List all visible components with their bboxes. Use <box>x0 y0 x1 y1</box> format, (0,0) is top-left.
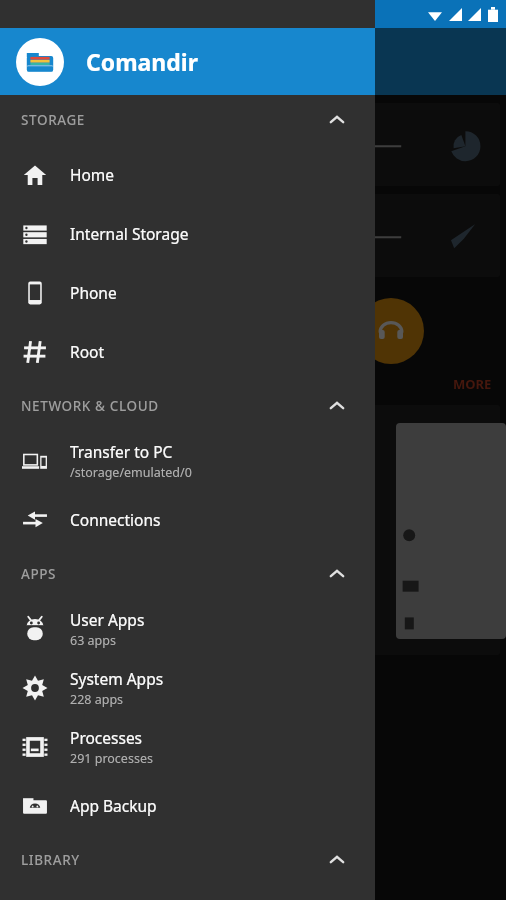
button[interactable]: STORAGE <box>0 95 375 145</box>
staticText: Home <box>70 164 115 185</box>
staticText: Phone <box>70 282 117 303</box>
button[interactable]: Transfer to PC <box>0 431 375 490</box>
button[interactable]: User Apps <box>0 599 375 658</box>
button[interactable]: Phone <box>0 263 375 322</box>
staticText: System Apps <box>70 668 164 689</box>
button[interactable]: Action <box>82 298 148 364</box>
staticText: LIBRARY <box>21 851 80 869</box>
button[interactable]: Home <box>0 145 375 204</box>
staticText: User Apps <box>70 609 145 630</box>
staticText: Comandir <box>86 46 198 77</box>
staticText: STORAGE <box>21 111 85 129</box>
button[interactable]: Root <box>0 322 375 381</box>
staticText: Processes <box>70 727 143 748</box>
button[interactable]: App Backup <box>0 776 375 835</box>
staticText: Connections <box>70 509 161 530</box>
staticText: 291 processes <box>70 750 153 767</box>
staticText: MORE <box>453 375 492 393</box>
staticText: Internal Storage <box>70 223 189 244</box>
button[interactable]: Comandir <box>0 28 375 95</box>
staticText: /storage/emulated/0 <box>70 464 192 481</box>
button[interactable]: Connections <box>0 490 375 549</box>
staticText: Transfer to PC <box>70 441 173 462</box>
staticText: 228 apps <box>70 691 124 708</box>
button[interactable]: NETWORK & CLOUD <box>0 381 375 431</box>
staticText: 63 apps <box>70 632 116 649</box>
button[interactable]: Processes <box>0 717 375 776</box>
staticText: APPS <box>21 565 57 583</box>
staticText: Root <box>70 341 104 362</box>
button[interactable]: LIBRARY <box>0 835 375 885</box>
button[interactable]: APPS <box>0 549 375 599</box>
button[interactable]: System Apps <box>0 658 375 717</box>
button[interactable]: Audio <box>358 298 424 364</box>
staticText: NETWORK & CLOUD <box>21 397 159 415</box>
button[interactable]: Internal Storage <box>0 204 375 263</box>
staticText: App Backup <box>70 795 157 816</box>
